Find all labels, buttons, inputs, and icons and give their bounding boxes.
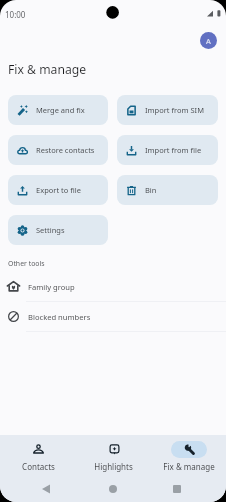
staticText: Merge and fix (36, 105, 85, 115)
staticText: Highlights (94, 461, 133, 472)
staticText: Settings (36, 225, 65, 235)
button[interactable]: Family group (0, 271, 226, 302)
button[interactable]: Blocked numbers (0, 301, 226, 332)
staticText: Bin (145, 185, 157, 195)
staticText: Export to file (36, 185, 81, 195)
staticText: Other tools (8, 259, 45, 268)
button[interactable]: Highlights (76, 435, 151, 476)
staticText: Contacts (22, 461, 55, 472)
button[interactable]: Import from file (117, 135, 218, 165)
button[interactable]: Merge and fix (8, 95, 108, 125)
button[interactable]: Contacts (0, 435, 76, 476)
button[interactable]: Bin (117, 175, 218, 205)
staticText: 10:00 (5, 9, 26, 20)
staticText: Family group (28, 282, 75, 292)
button[interactable]: Fix & manage (151, 435, 226, 476)
button[interactable]: Restore contacts (8, 135, 108, 165)
button[interactable]: Settings (8, 215, 108, 245)
staticText: Restore contacts (36, 145, 95, 155)
button[interactable]: Import from SIM (117, 95, 218, 125)
staticText: Blocked numbers (28, 312, 91, 322)
staticText: Import from file (145, 145, 202, 155)
staticText: Import from SIM (145, 105, 204, 115)
staticText: Fix & manage (8, 61, 87, 78)
button[interactable]: Export to file (8, 175, 108, 205)
button[interactable]: Account (200, 32, 217, 49)
staticText: Fix & manage (163, 461, 215, 472)
staticText: A (206, 36, 211, 46)
